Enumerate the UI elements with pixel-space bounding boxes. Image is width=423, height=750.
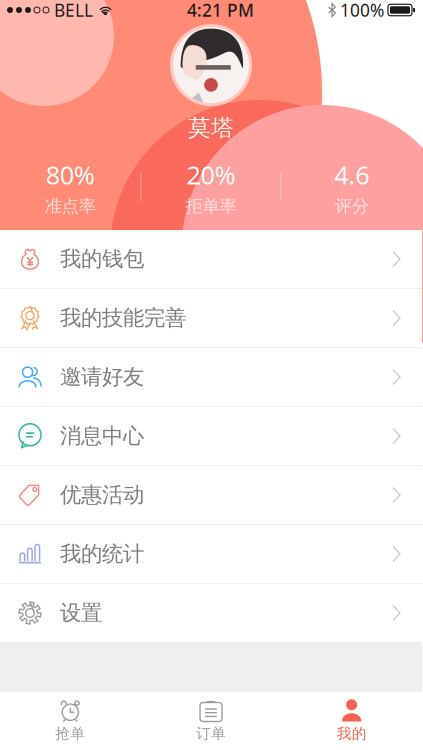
staticText: 我的 [337,724,367,742]
staticText: 评分 [335,196,369,217]
staticText: 拒单率 [185,196,236,217]
staticText: 80% [46,158,95,192]
staticText: 20% [186,158,235,192]
button[interactable]: 邀请好友 [0,348,422,407]
staticText: BELL [54,0,93,21]
button[interactable]: 订单 [141,692,281,750]
button[interactable]: 我的 [281,692,422,750]
staticText: 我的统计 [60,541,144,567]
staticText: 我的技能完善 [60,305,186,331]
staticText: 消息中心 [60,423,144,449]
button[interactable]: 我的统计 [0,525,422,584]
staticText: 莫塔 [188,114,234,142]
button[interactable]: 我的钱包 [0,230,422,289]
staticText: 抢单 [55,724,85,742]
staticText: 4.6 [334,158,369,192]
button[interactable]: 设置 [0,584,422,643]
staticText: 邀请好友 [60,364,144,390]
staticText: 100% [340,0,384,21]
staticText: 我的钱包 [60,246,144,272]
staticText: 4:21 PM [187,0,254,21]
staticText: 订单 [196,724,226,742]
staticText: 准点率 [45,196,96,217]
button[interactable]: 消息中心 [0,407,422,466]
button[interactable]: 抢单 [0,692,141,750]
button[interactable]: 优惠活动 [0,466,422,525]
button[interactable]: 我的技能完善 [0,289,422,348]
staticText: 优惠活动 [60,482,144,508]
staticText: 设置 [60,600,102,626]
